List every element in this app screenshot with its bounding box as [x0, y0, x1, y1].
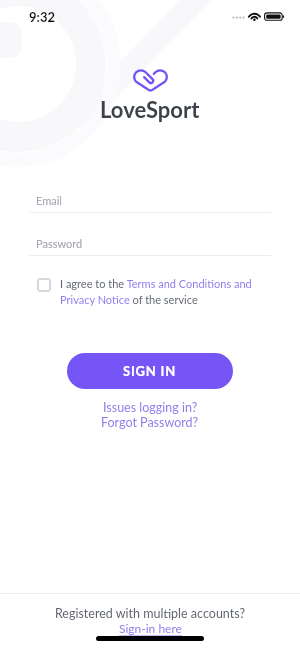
staticText: LoveSport — [100, 96, 200, 122]
button[interactable]: I agree to the Terms and Conditions and … — [60, 277, 276, 306]
button[interactable]: Sign-in here — [119, 621, 182, 635]
button[interactable]: Forgot Password? — [101, 415, 199, 430]
button[interactable]: Issues logging in? — [103, 400, 198, 415]
staticText: SIGN IN — [123, 363, 177, 379]
button[interactable]: I agree to the terms and conditions — [37, 278, 51, 292]
staticText: 9:32 — [29, 9, 55, 25]
staticText: Password — [36, 237, 83, 250]
button[interactable]: SIGN IN — [67, 353, 233, 389]
staticText: Registered with multiple accounts? — [0, 606, 300, 621]
staticText: Email — [36, 194, 62, 207]
